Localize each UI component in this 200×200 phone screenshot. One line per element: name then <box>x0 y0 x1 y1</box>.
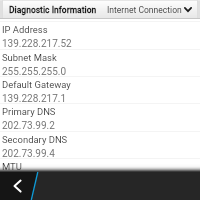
staticText: Subnet Mask <box>2 52 57 63</box>
staticText: Diagnostic Information <box>9 5 97 15</box>
button[interactable]: Subnet Mask <box>0 49 200 76</box>
staticText: Primary DNS <box>2 106 56 117</box>
staticText: 139.228.217.52 <box>2 38 72 50</box>
staticText: MTU <box>2 161 22 172</box>
staticText: 255.255.255.0 <box>2 66 67 78</box>
button[interactable]: Primary DNS <box>0 103 200 130</box>
button[interactable]: Diagnostic Information <box>0 0 100 18</box>
button[interactable]: Secondary DNS <box>0 131 200 158</box>
button[interactable]: Default Gateway <box>0 76 200 103</box>
staticText: 139.228.217.1 <box>2 93 67 105</box>
staticText: 202.73.99.4 <box>2 148 55 160</box>
staticText: Default Gateway <box>2 79 71 90</box>
staticText: Internet Connection <box>107 5 182 15</box>
button[interactable]: Internet Connection <box>104 0 197 18</box>
staticText: Secondary DNS <box>2 134 68 145</box>
staticText: IP Address <box>2 24 48 35</box>
staticText: 202.73.99.2 <box>2 120 55 132</box>
button[interactable]: IP Address <box>0 21 200 48</box>
button[interactable]: Back <box>0 172 34 200</box>
button[interactable]: MTU <box>0 158 200 185</box>
staticText: 1500 <box>2 175 25 187</box>
